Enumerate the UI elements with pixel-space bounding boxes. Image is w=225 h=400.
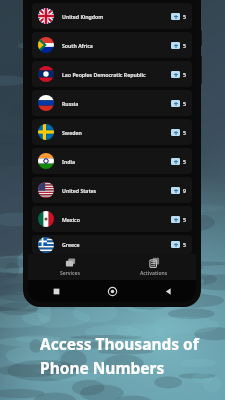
button[interactable]: Greece — [32, 235, 192, 254]
staticText: Services — [60, 270, 80, 277]
staticText: South Africa — [62, 42, 93, 49]
staticText: 5 — [183, 100, 186, 107]
button[interactable]: Mexico — [32, 206, 192, 232]
staticText: United Kingdom — [62, 13, 104, 20]
button[interactable]: Recents — [28, 280, 84, 302]
staticText: Russia — [62, 100, 79, 107]
button[interactable]: Lao Peoples Democratic Republic — [32, 61, 192, 87]
button[interactable]: Sweden — [32, 119, 192, 145]
staticText: 5 — [183, 13, 186, 20]
staticText: 5 — [183, 216, 186, 223]
button[interactable]: South Africa — [32, 32, 192, 58]
button[interactable]: India — [32, 148, 192, 174]
staticText: Activations — [140, 270, 168, 277]
button[interactable]: Activations — [112, 254, 196, 280]
staticText: 5 — [183, 71, 186, 78]
button[interactable]: United Kingdom — [32, 3, 192, 29]
button[interactable]: Services — [28, 254, 112, 280]
staticText: Sweden — [62, 129, 82, 136]
staticText: Phone Numbers Globally — [40, 357, 225, 378]
staticText: 5 — [183, 42, 186, 49]
staticText: 5 — [183, 158, 186, 165]
staticText: 5 — [183, 241, 186, 248]
button[interactable]: United States — [32, 177, 192, 203]
staticText: Lao Peoples Democratic Republic — [62, 71, 146, 78]
staticText: Greece — [62, 241, 80, 248]
staticText: Access Thousands of — [40, 333, 199, 354]
staticText: 9 — [183, 187, 186, 194]
button[interactable]: Back — [140, 280, 196, 302]
button[interactable]: Home — [84, 280, 140, 302]
staticText: India — [62, 158, 75, 165]
staticText: United States — [62, 187, 97, 194]
staticText: Mexico — [62, 216, 80, 223]
button[interactable]: Russia — [32, 90, 192, 116]
staticText: 5 — [183, 129, 186, 136]
